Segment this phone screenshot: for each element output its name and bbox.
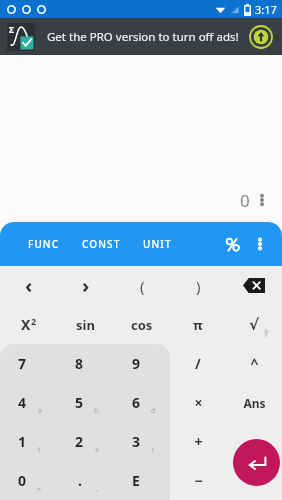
button[interactable]: Calculate bbox=[233, 439, 280, 486]
staticText: = bbox=[37, 484, 42, 494]
staticText: 8 bbox=[75, 354, 84, 373]
staticText: 9 bbox=[132, 354, 141, 373]
button[interactable]: FUNC bbox=[22, 231, 66, 257]
button[interactable]: 1 bbox=[0, 422, 57, 461]
button[interactable]: . bbox=[57, 461, 114, 500]
button[interactable]: Variables bbox=[218, 230, 246, 258]
staticText: 3:17 bbox=[255, 2, 277, 17]
staticText: 3 bbox=[132, 432, 141, 451]
button[interactable]: 3 bbox=[114, 422, 170, 461]
staticText: ∛ bbox=[264, 330, 270, 339]
staticText: 0 bbox=[18, 471, 27, 490]
staticText: cos bbox=[131, 316, 153, 334]
staticText: π bbox=[193, 316, 203, 334]
staticText: 0 bbox=[240, 189, 250, 212]
button[interactable] bbox=[226, 461, 282, 500]
staticText: CONST bbox=[82, 237, 121, 251]
staticText: x bbox=[95, 445, 99, 455]
button[interactable]: 6 bbox=[114, 383, 170, 422]
button[interactable]: 5 bbox=[57, 383, 114, 422]
staticText: X bbox=[21, 315, 31, 334]
button[interactable]: X bbox=[0, 305, 57, 344]
button[interactable] bbox=[226, 422, 282, 461]
staticText: − bbox=[194, 471, 203, 490]
button[interactable]: E bbox=[114, 461, 170, 500]
button[interactable]: 9 bbox=[114, 344, 170, 383]
staticText: › bbox=[82, 272, 90, 299]
button[interactable]: ^ bbox=[226, 344, 282, 383]
staticText: 2 bbox=[75, 432, 84, 451]
staticText: E bbox=[132, 471, 140, 490]
staticText: FUNC bbox=[28, 237, 60, 251]
staticText: t bbox=[38, 445, 41, 455]
button[interactable]: − bbox=[170, 461, 226, 500]
button[interactable]: cos bbox=[114, 305, 170, 344]
button[interactable]: CONST bbox=[76, 231, 127, 257]
staticText: Ans bbox=[243, 395, 266, 411]
button[interactable]: π bbox=[170, 305, 226, 344]
staticText: ‹ bbox=[25, 272, 33, 299]
staticText: ^ bbox=[250, 354, 259, 373]
staticText: b bbox=[94, 406, 99, 416]
staticText: 1 bbox=[18, 432, 27, 451]
staticText: ) bbox=[196, 276, 201, 296]
button[interactable]: Ans bbox=[226, 383, 282, 422]
button[interactable]: Σ bbox=[0, 18, 282, 55]
staticText: / bbox=[195, 354, 201, 373]
staticText: sin bbox=[76, 316, 95, 334]
button[interactable]: 2 bbox=[57, 422, 114, 461]
staticText: 7 bbox=[18, 354, 27, 373]
button[interactable]: ( bbox=[114, 266, 170, 305]
button[interactable]: × bbox=[170, 383, 226, 422]
button[interactable]: More options bbox=[246, 230, 274, 258]
button[interactable]: / bbox=[170, 344, 226, 383]
button[interactable]: + bbox=[170, 422, 226, 461]
staticText: √ bbox=[249, 316, 260, 333]
staticText: d bbox=[151, 406, 156, 416]
staticText: , bbox=[96, 484, 98, 494]
button[interactable]: 7 bbox=[0, 344, 57, 383]
staticText: Σ bbox=[9, 23, 15, 35]
staticText: ( bbox=[140, 276, 145, 296]
button[interactable]: UNIT bbox=[137, 231, 178, 257]
staticText: 4 bbox=[18, 393, 27, 412]
staticText: . bbox=[78, 471, 82, 490]
button[interactable]: › bbox=[57, 266, 114, 305]
button[interactable]: ) bbox=[170, 266, 226, 305]
button[interactable]: Display options bbox=[250, 188, 274, 212]
staticText: × bbox=[194, 393, 203, 412]
button[interactable]: 8 bbox=[57, 344, 114, 383]
button[interactable]: 4 bbox=[0, 383, 57, 422]
button[interactable]: Backspace bbox=[226, 266, 282, 305]
staticText: i bbox=[152, 445, 154, 455]
button[interactable]: Upgrade bbox=[250, 26, 272, 48]
staticText: a bbox=[38, 406, 42, 416]
button[interactable]: ‹ bbox=[0, 266, 57, 305]
staticText: 5 bbox=[75, 393, 84, 412]
staticText: 6 bbox=[132, 393, 141, 412]
staticText: + bbox=[194, 432, 203, 451]
staticText: 2 bbox=[31, 315, 37, 327]
button[interactable]: sin bbox=[57, 305, 114, 344]
staticText: UNIT bbox=[143, 237, 172, 251]
button[interactable]: 0 bbox=[0, 461, 57, 500]
button[interactable]: √ bbox=[226, 305, 282, 344]
staticText: Get the PRO version to turn off ads! bbox=[47, 29, 250, 45]
